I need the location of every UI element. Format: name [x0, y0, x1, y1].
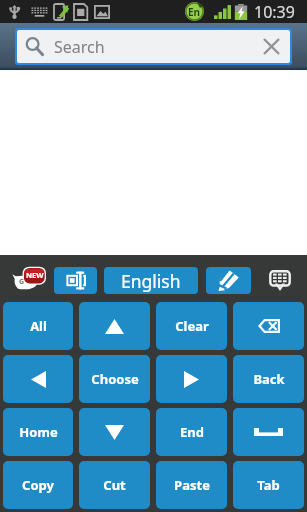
staticText: End — [180, 423, 204, 441]
button[interactable] — [79, 408, 150, 456]
button[interactable] — [233, 408, 304, 456]
button[interactable]: Handwriting — [206, 267, 251, 294]
button[interactable] — [233, 302, 304, 350]
staticText: NEW — [26, 270, 44, 280]
staticText: Clear — [175, 317, 209, 335]
button[interactable]: Search — [17, 30, 290, 63]
button[interactable]: Tab — [233, 461, 304, 509]
staticText: Search — [54, 36, 105, 58]
button[interactable]: End — [156, 408, 227, 456]
button[interactable]: Clear — [156, 302, 227, 350]
button[interactable]: Clear search — [255, 30, 288, 63]
button[interactable] — [156, 355, 227, 403]
button[interactable]: Choose — [79, 355, 150, 403]
button[interactable]: What's new — [11, 267, 47, 291]
button[interactable] — [3, 355, 73, 403]
staticText: Home — [19, 423, 58, 441]
staticText: Tab — [257, 476, 280, 494]
button[interactable]: Back — [233, 355, 304, 403]
button[interactable]: Floating keyboard — [54, 267, 97, 294]
button[interactable]: All — [3, 302, 73, 350]
staticText: English — [121, 269, 181, 293]
staticText: Cut — [103, 476, 126, 494]
button[interactable] — [79, 302, 150, 350]
staticText: G — [19, 277, 25, 287]
button[interactable]: Paste — [156, 461, 227, 509]
staticText: Copy — [22, 476, 54, 494]
button[interactable]: Cut — [79, 461, 150, 509]
staticText: All — [30, 317, 47, 335]
staticText: En — [188, 5, 201, 19]
button[interactable]: English — [104, 267, 198, 294]
button[interactable]: Hide keyboard — [268, 268, 292, 292]
button[interactable]: Copy — [3, 461, 73, 509]
staticText: 10:39 — [254, 1, 295, 23]
staticText: Choose — [91, 370, 139, 388]
button[interactable]: Home — [3, 408, 73, 456]
staticText: Paste — [174, 476, 210, 494]
staticText: Back — [253, 370, 285, 388]
